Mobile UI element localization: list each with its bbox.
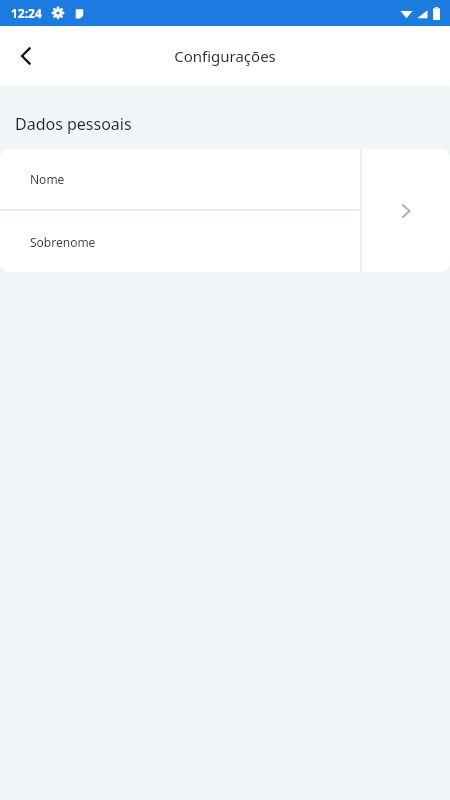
button[interactable]: Sobrenome	[0, 211, 360, 272]
button[interactable]: Open personal data	[362, 149, 450, 272]
staticText: Dados pessoais	[15, 113, 132, 135]
button[interactable]: Back	[6, 36, 46, 76]
button[interactable]: Nome	[0, 149, 360, 209]
staticText: Configurações	[174, 46, 276, 66]
staticText: 12:24	[11, 5, 42, 21]
staticText: Sobrenome	[30, 234, 96, 250]
staticText: Nome	[30, 171, 65, 187]
